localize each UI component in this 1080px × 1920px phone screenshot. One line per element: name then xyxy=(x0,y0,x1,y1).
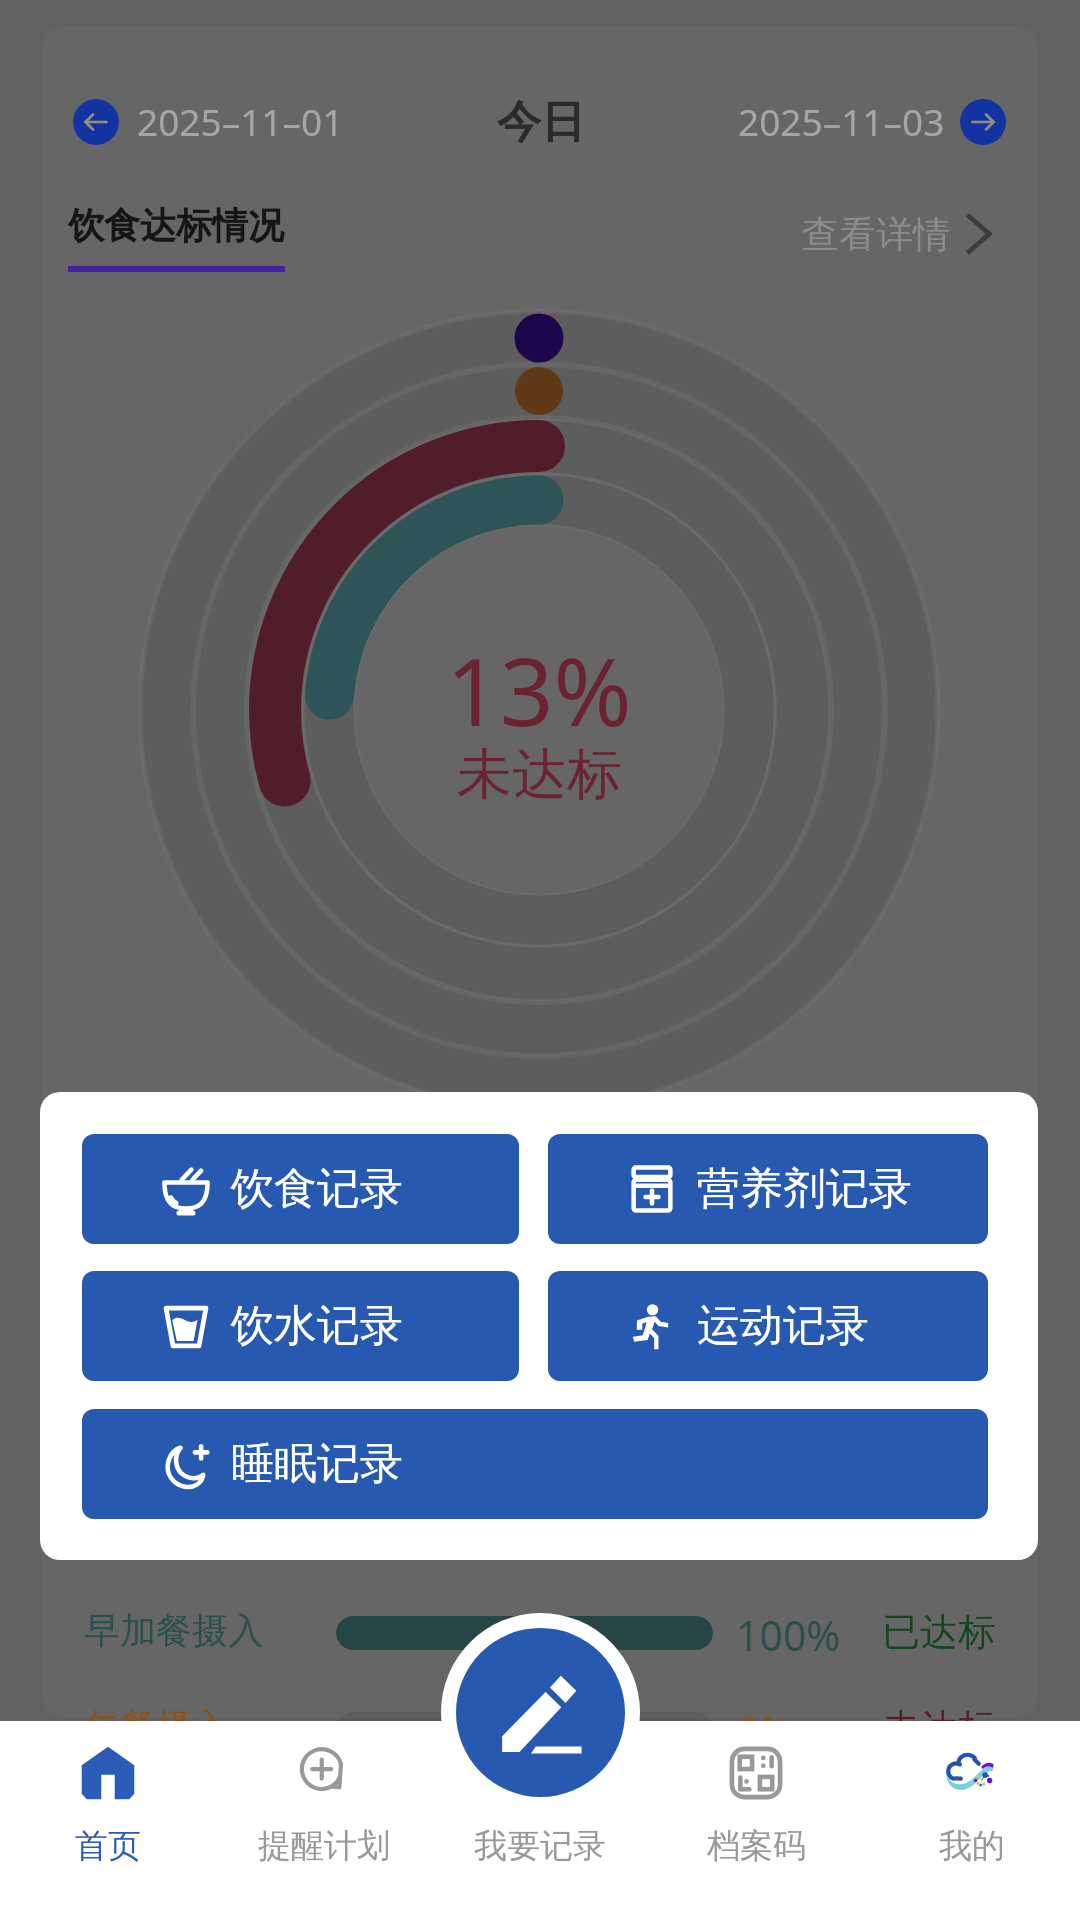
button[interactable]: 睡眠记录 xyxy=(82,1409,988,1519)
button[interactable]: 查看详情 xyxy=(802,196,1006,272)
staticText: 0% xyxy=(736,1703,794,1759)
staticText: 13% xyxy=(446,626,632,754)
staticText: 今日 xyxy=(497,95,585,150)
staticText: 我的 xyxy=(939,1825,1005,1867)
staticText: 饮水记录 xyxy=(231,1299,403,1353)
button[interactable]: 提醒计划 xyxy=(216,1721,432,1920)
staticText: 查看详情 xyxy=(802,211,950,258)
staticText: 2025–11–01 xyxy=(137,96,344,146)
staticText: 睡眠记录 xyxy=(231,1437,403,1491)
button[interactable]: 档案码 xyxy=(648,1721,864,1920)
staticText: 2025–11–03 xyxy=(738,96,945,146)
button[interactable]: Previous day xyxy=(73,99,119,145)
button[interactable]: Add record xyxy=(456,1628,625,1797)
staticText: 档案码 xyxy=(707,1825,806,1867)
staticText: 早加餐摄入 xyxy=(84,1608,264,1653)
button[interactable]: 运动记录 xyxy=(548,1271,988,1381)
staticText: 午餐摄入 xyxy=(84,1704,228,1749)
staticText: 未达标 xyxy=(457,740,622,809)
staticText: 100% xyxy=(736,1607,841,1663)
staticText: 提醒计划 xyxy=(258,1825,390,1867)
staticText: 饮食记录 xyxy=(231,1162,403,1216)
staticText: 饮食达标情况 xyxy=(68,203,284,248)
button[interactable]: 我要记录 xyxy=(432,1721,648,1920)
button[interactable]: 我的 xyxy=(864,1721,1080,1920)
staticText: 营养剂记录 xyxy=(697,1162,912,1216)
button[interactable]: 饮食记录 xyxy=(82,1134,519,1244)
staticText: 未达标 xyxy=(882,1704,996,1752)
button[interactable]: 首页 xyxy=(0,1721,216,1920)
button[interactable]: 饮水记录 xyxy=(82,1271,519,1381)
button[interactable]: Next day xyxy=(960,99,1006,145)
staticText: 首页 xyxy=(75,1825,141,1867)
staticText: 运动记录 xyxy=(697,1299,869,1353)
staticText: 我要记录 xyxy=(474,1825,606,1867)
button[interactable]: 营养剂记录 xyxy=(548,1134,988,1244)
staticText: 已达标 xyxy=(882,1608,996,1656)
